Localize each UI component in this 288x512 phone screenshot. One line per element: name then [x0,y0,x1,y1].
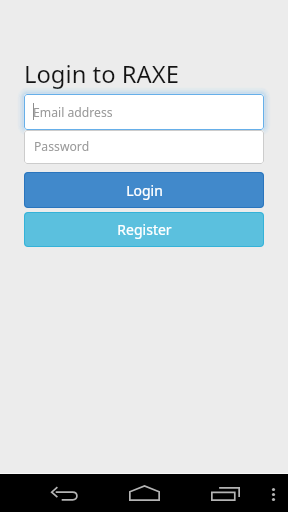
button[interactable]: Password [24,130,264,164]
staticText: Password [34,138,90,155]
button[interactable]: Home [117,474,172,512]
button[interactable]: Email address [24,94,264,130]
button[interactable]: More options [259,474,286,512]
staticText: Register [117,220,172,239]
button[interactable]: Login [24,172,264,208]
staticText: Login to RAXE [24,58,179,90]
button[interactable]: Recent apps [198,474,253,512]
staticText: Login [126,181,163,200]
button[interactable]: Register [24,212,264,247]
button[interactable]: Back [37,474,92,512]
staticText: Email address [33,104,113,121]
